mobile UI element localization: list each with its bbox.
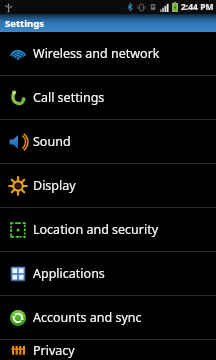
button[interactable]: Privacy (0, 340, 216, 360)
button[interactable]: Applications (0, 252, 216, 295)
staticText: Wireless and network (33, 45, 160, 62)
staticText: Accounts and sync (33, 309, 142, 326)
staticText: Display (33, 177, 76, 194)
button[interactable]: Sound (0, 120, 216, 163)
button[interactable]: Location and security (0, 208, 216, 251)
button[interactable]: Display (0, 164, 216, 207)
button[interactable]: Wireless and network (0, 32, 216, 75)
staticText: Settings (5, 17, 44, 30)
staticText: 2:44 PM (181, 1, 214, 13)
staticText: Applications (33, 265, 105, 282)
staticText: Call settings (33, 89, 105, 106)
button[interactable]: Accounts and sync (0, 296, 216, 339)
staticText: Privacy (33, 342, 75, 359)
button[interactable]: Call settings (0, 76, 216, 119)
staticText: Sound (33, 133, 71, 150)
staticText: Location and security (33, 221, 159, 238)
